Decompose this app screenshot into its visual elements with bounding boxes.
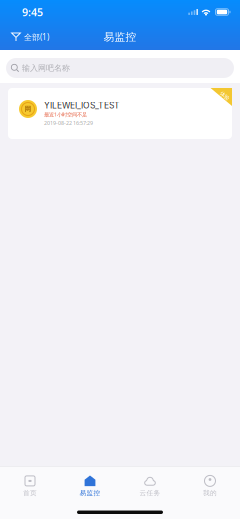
staticText: 体验 bbox=[219, 92, 229, 99]
staticText: 输入网吧名称 bbox=[22, 63, 70, 73]
staticText: 易监控 bbox=[79, 489, 100, 497]
button[interactable]: 首页 bbox=[0, 470, 60, 497]
button[interactable]: 易监控 bbox=[60, 470, 120, 497]
staticText: 全部(1) bbox=[24, 32, 49, 42]
staticText: 我的 bbox=[203, 489, 217, 497]
button[interactable]: 网 bbox=[8, 88, 232, 139]
staticText: 网 bbox=[24, 105, 31, 113]
staticText: 最近1小时空间不足 bbox=[44, 111, 87, 118]
staticText: 易监控 bbox=[103, 30, 136, 43]
button[interactable]: 我的 bbox=[180, 470, 240, 497]
staticText: YILEWEI_IOS_TEST bbox=[44, 100, 120, 111]
button[interactable]: 云任务 bbox=[120, 470, 180, 497]
staticText: 9:45 bbox=[22, 5, 43, 19]
staticText: 云任务 bbox=[139, 489, 160, 497]
button[interactable]: 全部(1) bbox=[0, 27, 57, 47]
button[interactable]: 输入网吧名称 bbox=[6, 58, 234, 78]
staticText: 首页 bbox=[23, 489, 37, 497]
staticText: 2019-08-22 16:57:29 bbox=[44, 119, 93, 127]
